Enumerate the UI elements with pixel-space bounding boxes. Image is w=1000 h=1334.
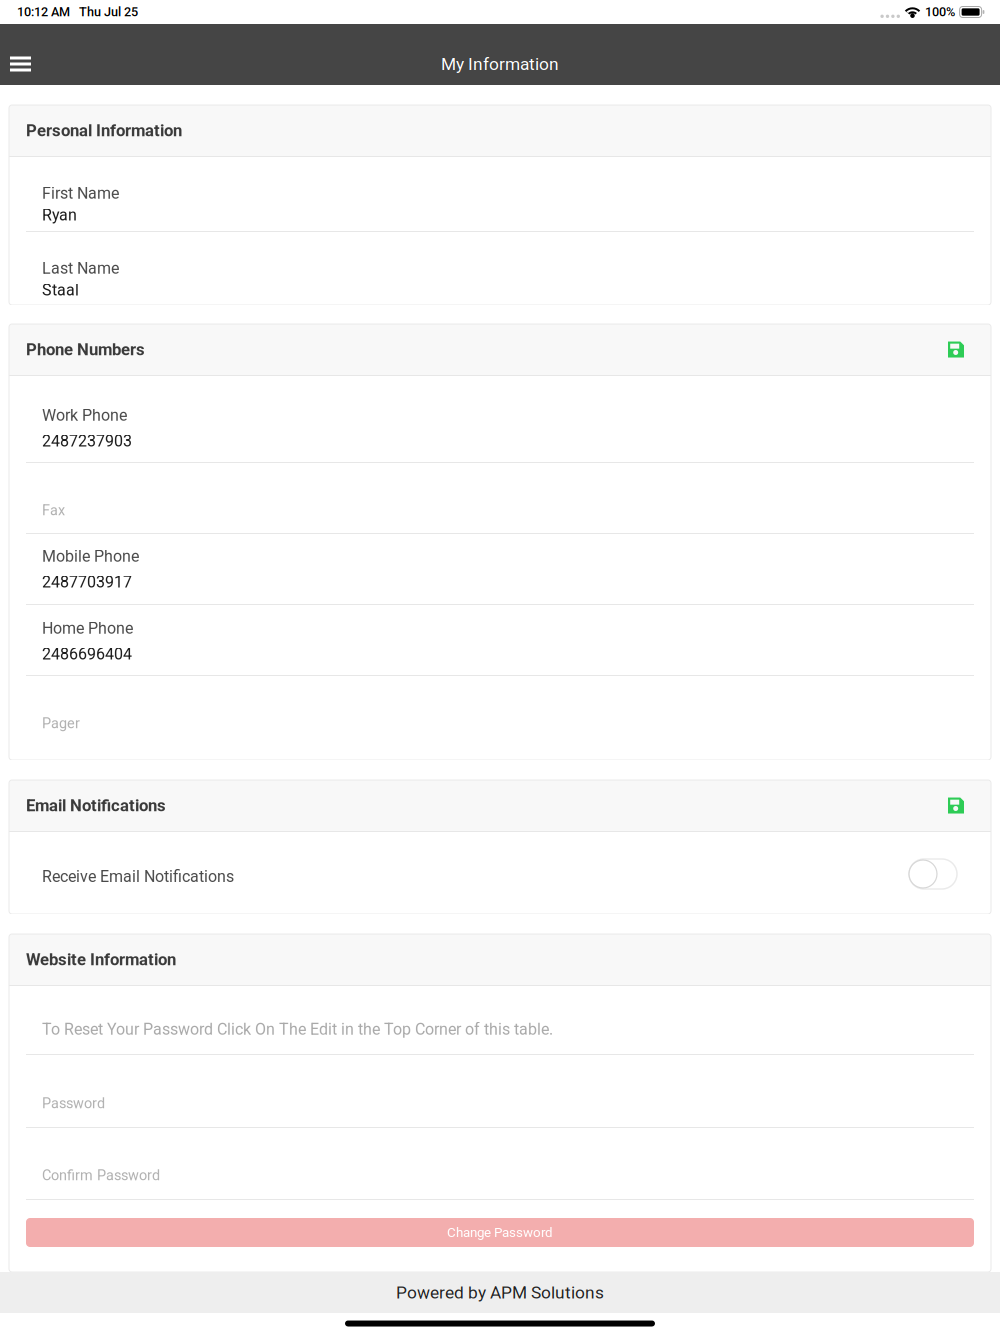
staticText: Powered by APM Solutions <box>396 1282 604 1303</box>
staticText: 2486696404 <box>42 645 132 664</box>
staticText: Home Phone <box>42 619 133 638</box>
staticText: Change Password <box>447 1225 553 1240</box>
staticText: Last Name <box>42 259 119 278</box>
staticText: Password <box>42 1095 105 1112</box>
staticText: Ryan <box>42 206 77 225</box>
button[interactable]: Save <box>936 333 976 365</box>
button[interactable]: Change Password <box>26 1218 974 1247</box>
staticText: Staal <box>42 281 79 300</box>
staticText: My Information <box>441 54 559 74</box>
staticText: Work Phone <box>42 406 127 425</box>
staticText: 2487237903 <box>42 432 132 451</box>
staticText: 2487703917 <box>42 573 132 592</box>
staticText: Mobile Phone <box>42 547 139 566</box>
staticText: First Name <box>42 184 119 203</box>
staticText: 100% <box>925 5 955 19</box>
button[interactable]: Save <box>936 789 976 821</box>
staticText: 10:12 AM <box>17 5 70 19</box>
staticText: Email Notifications <box>26 796 166 815</box>
button[interactable]: Receive Email Notifications <box>909 859 957 889</box>
staticText: Thu Jul 25 <box>79 5 138 19</box>
staticText: Phone Numbers <box>26 340 145 359</box>
staticText: To Reset Your Password Click On The Edit… <box>42 1020 553 1039</box>
staticText: Receive Email Notifications <box>42 867 234 886</box>
staticText: Personal Information <box>26 121 182 140</box>
staticText: Website Information <box>26 950 176 969</box>
staticText: Pager <box>42 715 80 732</box>
staticText: Confirm Password <box>42 1167 160 1184</box>
button[interactable]: Menu <box>0 47 41 81</box>
staticText: Fax <box>42 502 65 519</box>
